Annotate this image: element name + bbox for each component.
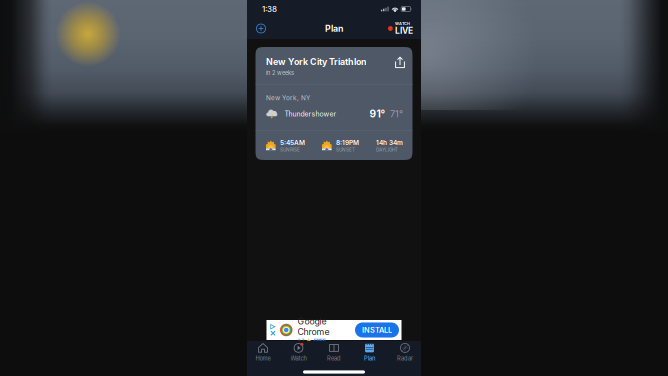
staticText: 71° — [390, 108, 403, 119]
staticText: INSTALL — [362, 325, 392, 334]
staticText: Thundershower — [284, 110, 336, 118]
staticText: DAYLIGHT — [376, 147, 398, 152]
staticText: Google Chrome — [297, 316, 329, 337]
staticText: WATCH — [395, 21, 410, 26]
button[interactable]: Radar — [389, 342, 421, 362]
button[interactable]: Share — [395, 46, 405, 68]
button[interactable]: Google Chrome — [266, 320, 401, 340]
staticText: SUNSET — [336, 147, 355, 152]
button[interactable]: Home — [247, 342, 279, 362]
staticText: Plan — [325, 23, 343, 34]
staticText: Watch — [290, 355, 306, 362]
staticText: New York City Triathlon — [266, 56, 367, 67]
staticText: Radar — [397, 355, 413, 362]
button[interactable]: Watch — [282, 342, 314, 362]
button[interactable]: Watch Live — [383, 18, 413, 39]
staticText: Plan — [364, 355, 375, 362]
button[interactable]: Plan — [353, 342, 385, 362]
button[interactable]: Read — [318, 342, 350, 362]
staticText: SUNRISE — [280, 147, 300, 152]
staticText: in 2 weeks — [266, 69, 294, 76]
button[interactable]: Add event — [250, 18, 272, 39]
staticText: New York, NY — [266, 94, 310, 102]
staticText: LIVE — [395, 25, 413, 36]
staticText: 1:38 — [262, 4, 277, 14]
staticText: 5:45AM — [280, 139, 305, 146]
staticText: 91° — [369, 108, 385, 120]
staticText: FREE — [314, 338, 326, 344]
staticText: 8:19PM — [336, 139, 359, 146]
staticText: 3.7 — [297, 338, 304, 344]
staticText: Home — [255, 355, 270, 362]
staticText: ★ — [306, 338, 312, 344]
staticText: 14h 34m — [376, 139, 403, 146]
staticText: Read — [327, 355, 341, 362]
